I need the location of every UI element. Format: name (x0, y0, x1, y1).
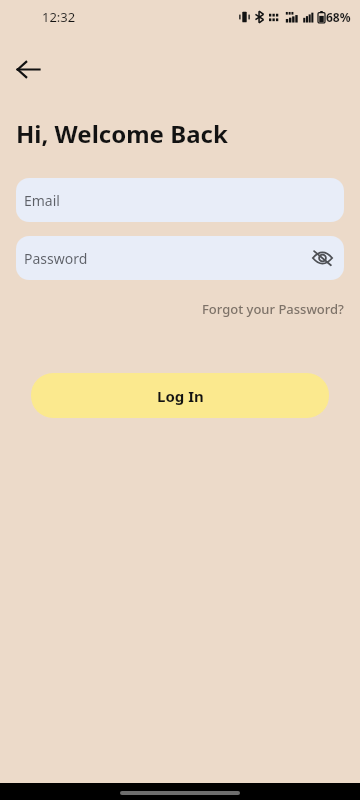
button[interactable]: Log In (31, 373, 329, 418)
staticText: 68% (326, 9, 351, 25)
button[interactable]: Email (16, 178, 344, 222)
button[interactable]: Forgot your Password? (202, 300, 344, 318)
button[interactable]: Back (6, 47, 50, 91)
staticText: Forgot your Password? (202, 300, 344, 318)
staticText: 12:32 (42, 8, 76, 26)
button[interactable]: Password (16, 236, 344, 280)
staticText: Hi, Welcome Back (16, 117, 228, 150)
staticText: Password (24, 249, 88, 268)
staticText: Email (24, 191, 60, 210)
button[interactable]: Show password (307, 243, 337, 273)
staticText: Log In (157, 386, 204, 406)
